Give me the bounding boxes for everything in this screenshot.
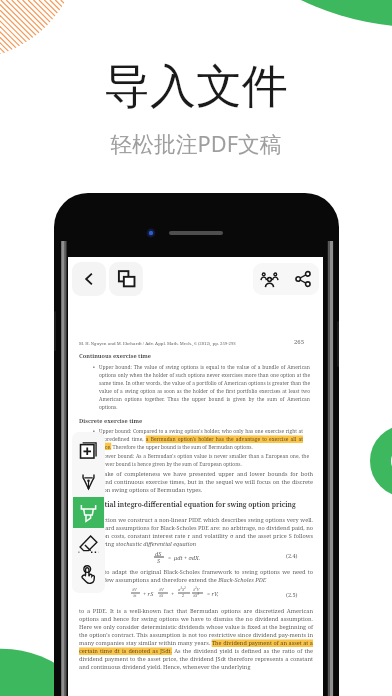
- staticText: Upper bound: Compared to a swing option'…: [99, 428, 303, 450]
- staticText: (2.5): [286, 591, 298, 599]
- button[interactable]: Eraser: [73, 528, 104, 559]
- staticText: •: [93, 428, 95, 435]
- staticText: σ²S²: [178, 587, 186, 592]
- button[interactable]: Pages: [109, 262, 143, 296]
- staticText: ∂V: [132, 587, 137, 592]
- staticText: ∂S: [159, 593, 164, 598]
- staticText: ∂t: [133, 593, 137, 598]
- staticText: 265: [294, 338, 305, 346]
- staticText: = rV,: [207, 590, 219, 598]
- staticText: ∂²V: [193, 587, 200, 592]
- staticText: ∂S²: [193, 593, 199, 598]
- button[interactable]: Pen: [73, 466, 104, 497]
- staticText: In this section we construct a non-linea…: [79, 516, 313, 548]
- staticText: For the sake of completeness we have pre…: [79, 470, 313, 494]
- staticText: S: [157, 557, 161, 565]
- button[interactable]: Select: [73, 559, 104, 590]
- staticText: Upper bound: The value of swing options …: [99, 364, 310, 410]
- staticText: In order to adapt the original Black-Sch…: [79, 568, 313, 584]
- staticText: 轻松批注PDF文稿: [110, 129, 282, 159]
- staticText: 导入文件: [104, 58, 288, 116]
- staticText: to a PIDE. It is a well-known fact that …: [79, 607, 313, 671]
- staticText: Lower bound: As a Bermudan's option valu…: [101, 453, 309, 467]
- button[interactable]: Share: [286, 263, 319, 295]
- button[interactable]: Add page: [73, 435, 104, 466]
- staticText: ∂V: [159, 587, 164, 592]
- staticText: + rS: [143, 590, 154, 598]
- staticText: M. H. Nguyen and M. Ehrhardt / Adv. Appl…: [79, 340, 236, 346]
- staticText: = μdt + σdX.: [168, 554, 201, 562]
- staticText: Discrete exercise time: [79, 417, 313, 425]
- staticText: Continuous exercise time: [79, 352, 313, 360]
- staticText: dS: [155, 550, 162, 558]
- staticText: (2.4): [286, 552, 298, 560]
- staticText: 3 A partial integro-differential equatio…: [79, 500, 313, 509]
- button[interactable]: Highlighter: [73, 497, 104, 528]
- staticText: 2: [182, 593, 185, 598]
- button[interactable]: Back: [72, 262, 106, 296]
- button[interactable]: Collaborators: [253, 263, 286, 295]
- staticText: +: [171, 590, 175, 598]
- staticText: •: [93, 364, 95, 371]
